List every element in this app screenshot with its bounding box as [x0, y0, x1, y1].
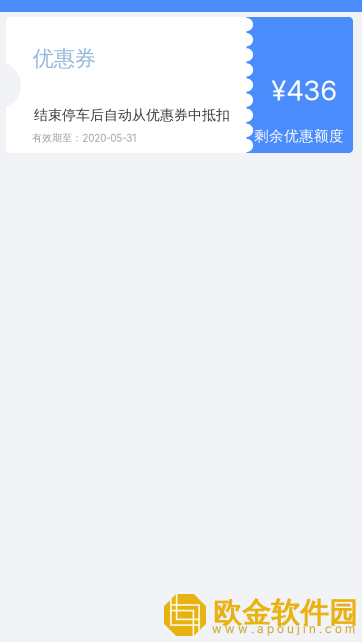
staticText: 剩余优惠额度	[254, 127, 344, 145]
staticText: 优惠券	[33, 45, 96, 72]
staticText: 欧金软件园	[213, 595, 358, 631]
staticText: 有效期至：2020-05-31	[32, 132, 136, 144]
staticText: w w w . a p o u j i n . c o m	[212, 622, 355, 636]
staticText: 结束停车后自动从优惠券中抵扣	[34, 106, 230, 124]
staticText: ¥436	[271, 74, 337, 107]
